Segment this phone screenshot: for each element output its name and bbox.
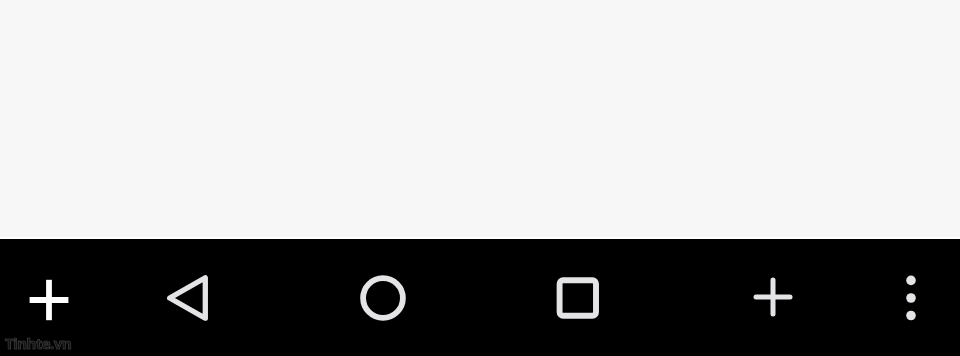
button[interactable]: Home	[359, 274, 407, 322]
button[interactable]: Add shortcut	[25, 274, 73, 322]
button[interactable]: Recent apps	[554, 274, 602, 322]
staticText: Tinhte.vn	[5, 333, 72, 353]
button[interactable]: Back	[163, 274, 211, 322]
button[interactable]: Add	[749, 273, 797, 321]
button[interactable]: More options	[887, 274, 935, 322]
staticText: Tinhte.vn	[5, 333, 72, 353]
